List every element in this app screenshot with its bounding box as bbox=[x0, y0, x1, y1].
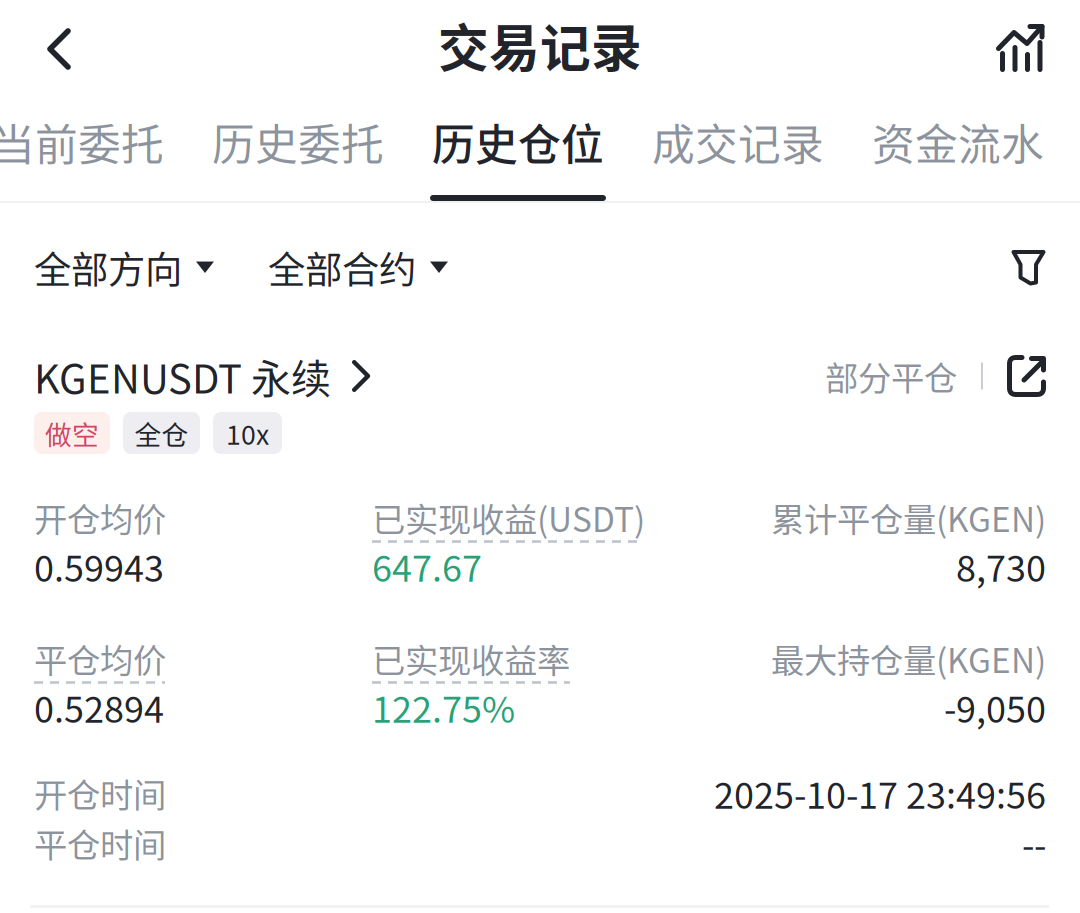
staticText: 已实现收益(USDT) bbox=[372, 493, 645, 542]
button[interactable]: 成交记录 bbox=[650, 96, 826, 201]
staticText: 开仓均价 bbox=[34, 493, 166, 542]
button[interactable]: KGENUSDT 永续 bbox=[34, 347, 371, 405]
button[interactable]: 全部合约 bbox=[268, 240, 448, 295]
staticText: 647.67 bbox=[372, 540, 482, 592]
staticText: 做空 bbox=[45, 414, 99, 452]
button[interactable]: Chart bbox=[996, 24, 1047, 72]
button[interactable]: Share bbox=[1007, 355, 1046, 397]
staticText: 122.75% bbox=[372, 681, 515, 733]
staticText: 2025-10-17 23:49:56 bbox=[714, 767, 1046, 819]
staticText: 成交记录 bbox=[652, 111, 824, 173]
staticText: 全部合约 bbox=[268, 240, 416, 295]
button[interactable]: 当前委托 bbox=[0, 96, 166, 201]
staticText: KGENUSDT 永续 bbox=[34, 347, 331, 405]
button[interactable]: 历史仓位 bbox=[430, 96, 606, 201]
staticText: 平仓均价 bbox=[34, 634, 166, 683]
staticText: 全仓 bbox=[134, 414, 188, 452]
staticText: 交易记录 bbox=[438, 8, 642, 82]
staticText: 资金流水 bbox=[872, 111, 1044, 173]
staticText: 历史仓位 bbox=[432, 111, 604, 173]
staticText: 10x bbox=[226, 414, 269, 452]
staticText: 部分平仓 bbox=[825, 352, 957, 400]
staticText: 平仓时间 bbox=[34, 819, 166, 867]
staticText: 0.59943 bbox=[34, 540, 164, 592]
staticText: -9,050 bbox=[944, 681, 1046, 733]
button[interactable]: 全部方向 bbox=[34, 240, 214, 295]
staticText: 已实现收益率 bbox=[372, 634, 570, 683]
button[interactable]: 资金流水 bbox=[870, 96, 1046, 201]
staticText: 0.52894 bbox=[34, 681, 164, 733]
staticText: 全部方向 bbox=[34, 240, 182, 295]
button[interactable]: Back bbox=[47, 27, 71, 69]
staticText: 开仓时间 bbox=[34, 769, 166, 817]
button[interactable]: Filter bbox=[1011, 249, 1046, 285]
staticText: 累计平仓量(KGEN) bbox=[771, 493, 1046, 542]
staticText: 当前委托 bbox=[0, 111, 164, 173]
staticText: 历史委托 bbox=[212, 111, 384, 173]
staticText: 8,730 bbox=[956, 540, 1046, 592]
staticText: -- bbox=[1022, 817, 1046, 869]
staticText: 最大持仓量(KGEN) bbox=[771, 634, 1046, 683]
button[interactable]: 历史委托 bbox=[210, 96, 386, 201]
